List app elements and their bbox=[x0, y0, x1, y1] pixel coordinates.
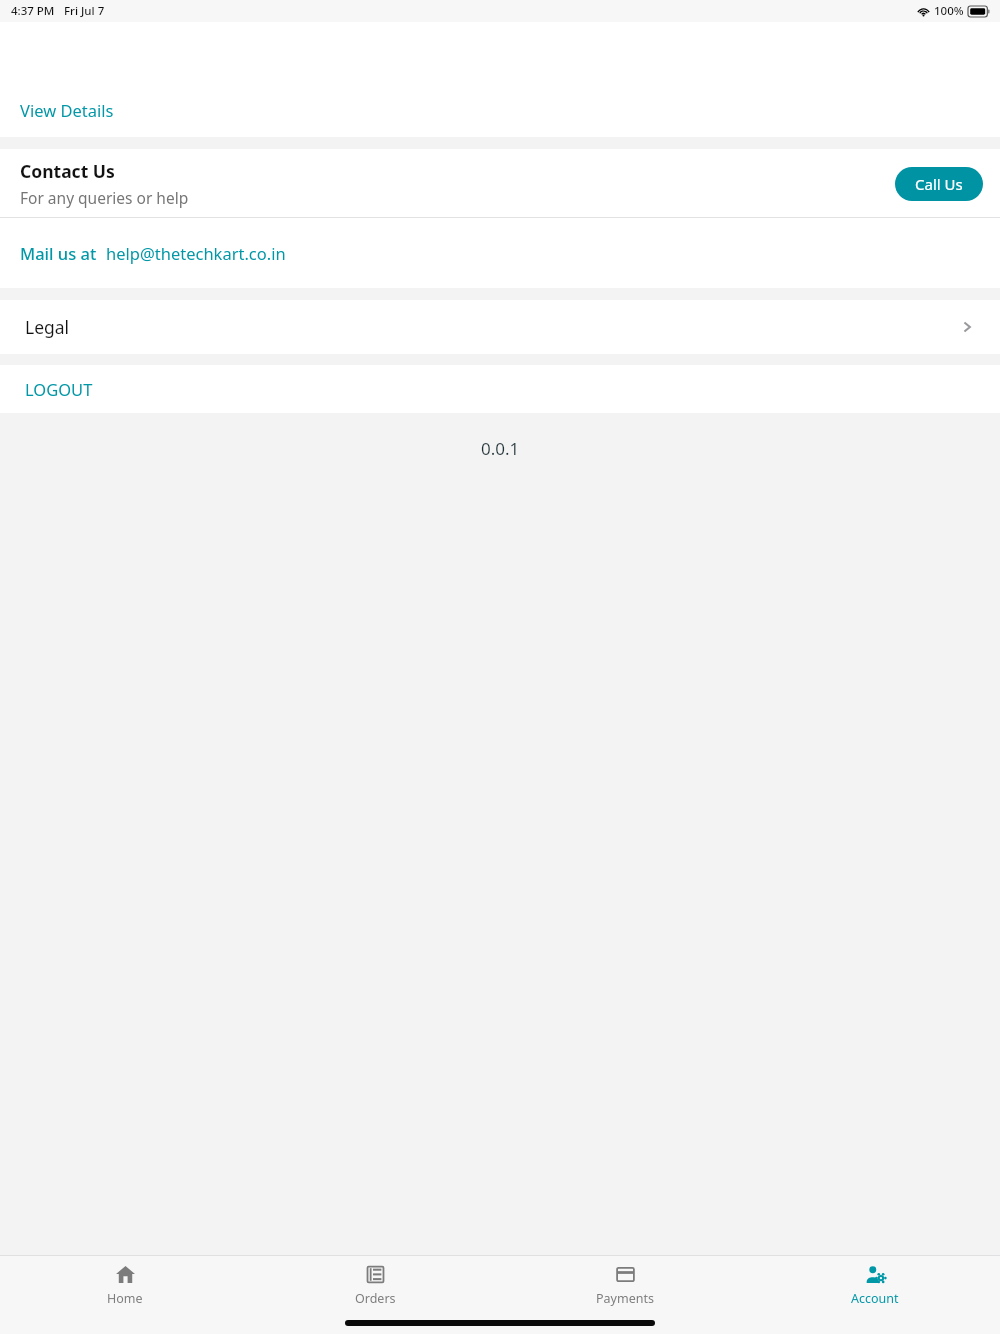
staticText: Legal bbox=[25, 315, 70, 339]
button[interactable]: Orders bbox=[250, 1256, 500, 1314]
staticText: LOGOUT bbox=[25, 378, 93, 400]
staticText: Call Us bbox=[915, 174, 963, 194]
staticText: Orders bbox=[355, 1290, 396, 1307]
button[interactable]: Account bbox=[750, 1256, 1000, 1314]
button[interactable]: Legal bbox=[0, 300, 1000, 354]
button[interactable]: Home bbox=[0, 1256, 250, 1314]
staticText: Mail us at bbox=[20, 242, 97, 264]
staticText: Account bbox=[851, 1290, 899, 1307]
button[interactable]: LOGOUT bbox=[0, 365, 1000, 413]
button[interactable]: Call Us bbox=[895, 167, 983, 201]
staticText: 0.0.1 bbox=[481, 437, 520, 460]
staticText: Fri Jul 7 bbox=[64, 3, 105, 19]
staticText: 4:37 PM bbox=[11, 3, 55, 19]
staticText: For any queries or help bbox=[20, 187, 189, 208]
staticText: 100% bbox=[934, 3, 964, 19]
staticText: help@thetechkart.co.in bbox=[106, 242, 286, 264]
button[interactable]: Payments bbox=[500, 1256, 750, 1314]
staticText: Payments bbox=[596, 1290, 654, 1307]
staticText: View Details bbox=[20, 99, 114, 121]
button[interactable]: View Details bbox=[10, 95, 124, 125]
button[interactable]: Mail us at bbox=[0, 218, 1000, 288]
staticText: Contact Us bbox=[20, 159, 115, 183]
staticText: Home bbox=[107, 1290, 143, 1307]
